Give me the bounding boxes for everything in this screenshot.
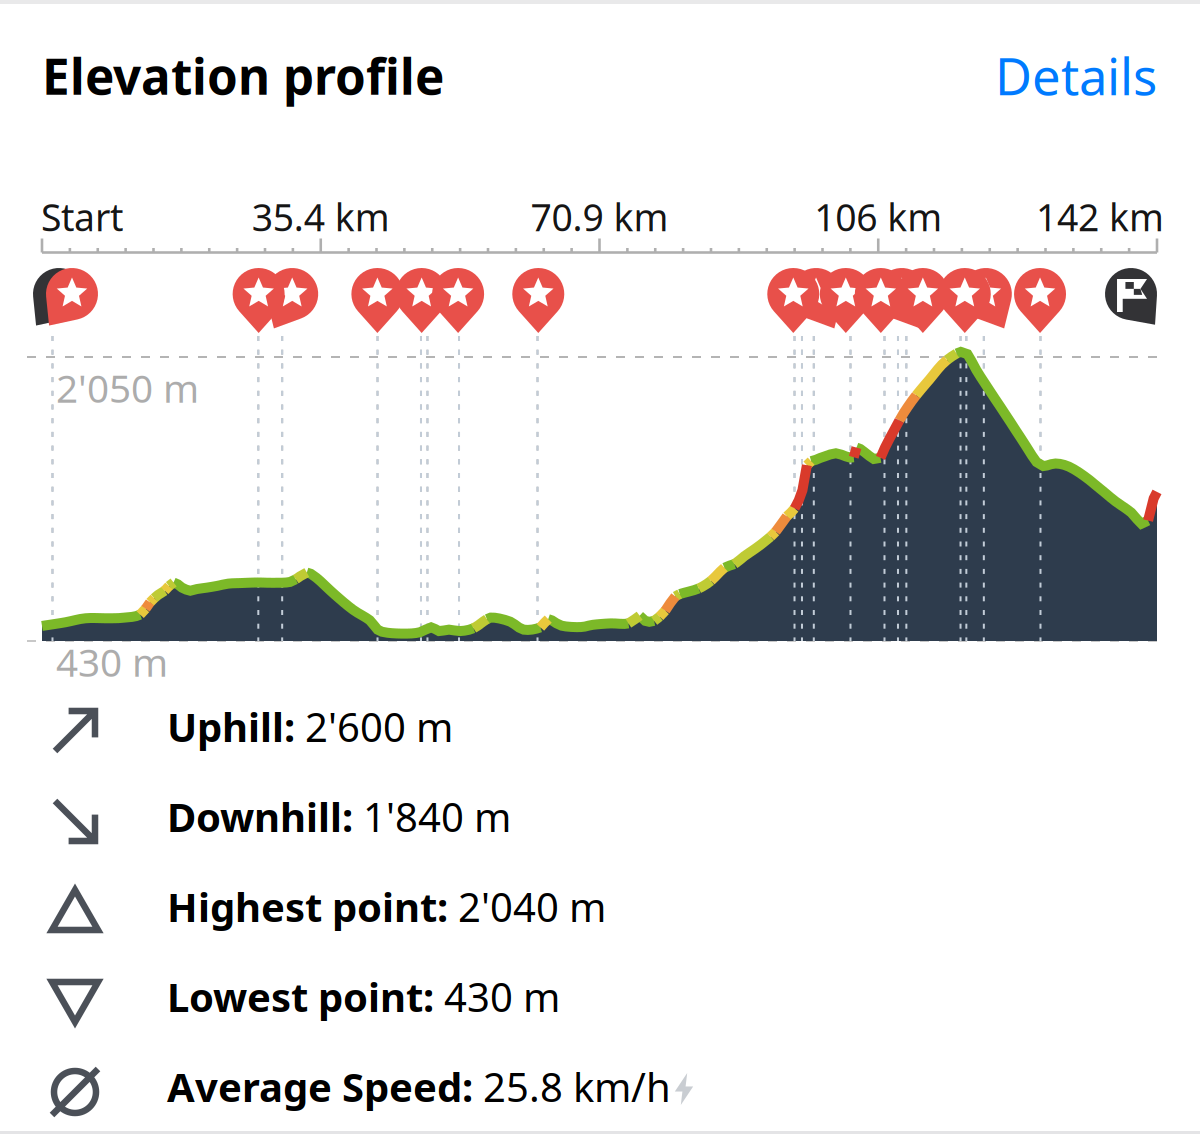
staticText: 2'600 m bbox=[295, 700, 453, 753]
staticText: 2'040 m bbox=[448, 880, 606, 933]
staticText: Details bbox=[995, 42, 1157, 109]
staticText: 1'840 m bbox=[353, 790, 511, 843]
staticText: Start bbox=[41, 192, 123, 242]
staticText: 142 km bbox=[1036, 192, 1164, 242]
staticText: Uphill: bbox=[167, 700, 295, 753]
staticText: 430 m bbox=[56, 636, 168, 687]
staticText: Highest point: bbox=[167, 880, 448, 933]
staticText: Average Speed: bbox=[167, 1060, 473, 1113]
staticText: 70.9 km bbox=[530, 192, 668, 242]
staticText: Downhill: bbox=[167, 790, 353, 843]
button[interactable]: Details bbox=[995, 42, 1157, 109]
staticText: 430 m bbox=[434, 970, 560, 1023]
staticText: 106 km bbox=[814, 192, 942, 242]
staticText: Lowest point: bbox=[167, 970, 434, 1023]
staticText: 25.8 km/h bbox=[473, 1060, 671, 1113]
staticText: Elevation profile bbox=[42, 43, 444, 108]
staticText: 35.4 km bbox=[252, 192, 390, 242]
staticText: 2'050 m bbox=[56, 362, 199, 413]
